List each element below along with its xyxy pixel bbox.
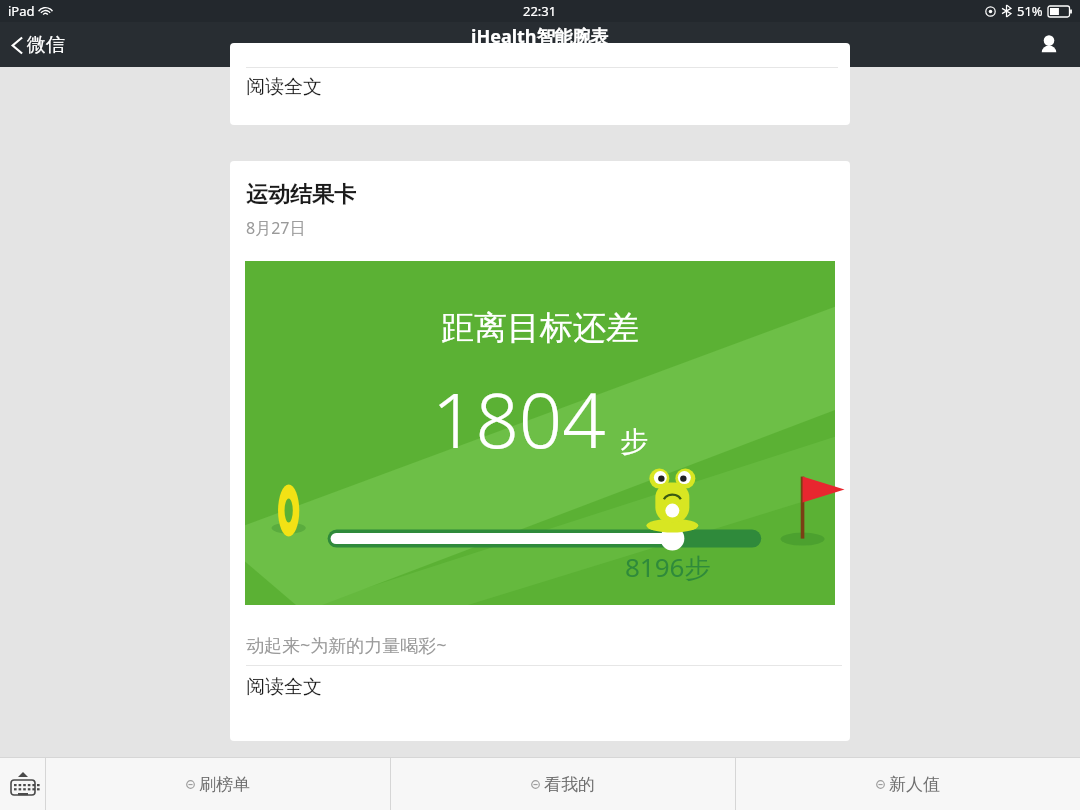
button[interactable]: 刷榜单	[46, 758, 390, 810]
staticText: 看我的	[544, 774, 595, 795]
staticText: iHealth智能腕表	[471, 24, 609, 49]
staticText: 8196步	[625, 549, 711, 585]
staticText: 刷榜单	[199, 774, 250, 795]
staticText: 8月27日	[246, 217, 306, 239]
button[interactable]: 阅读全文	[230, 67, 850, 125]
button[interactable]: 微信	[8, 29, 69, 61]
staticText: 51%	[1017, 2, 1043, 20]
staticText: 1804	[432, 367, 606, 471]
button[interactable]: 新人值	[736, 758, 1080, 810]
staticText: 动起来~为新的力量喝彩~	[246, 633, 447, 658]
staticText: 运动结果卡	[246, 181, 356, 209]
staticText: 微信	[27, 33, 65, 57]
button[interactable]: Hide keyboard	[0, 758, 45, 810]
staticText: 步	[620, 424, 648, 459]
staticText: 距离目标还差	[245, 307, 835, 349]
button[interactable]: 阅读全文	[230, 665, 850, 741]
button[interactable]: 看我的	[391, 758, 735, 810]
staticText: 阅读全文	[246, 75, 322, 99]
staticText: 新人值	[889, 774, 940, 795]
staticText: 22:31	[523, 2, 557, 20]
staticText: 阅读全文	[246, 675, 322, 699]
staticText: iPad	[8, 2, 35, 20]
button[interactable]: Profile	[1032, 28, 1066, 62]
